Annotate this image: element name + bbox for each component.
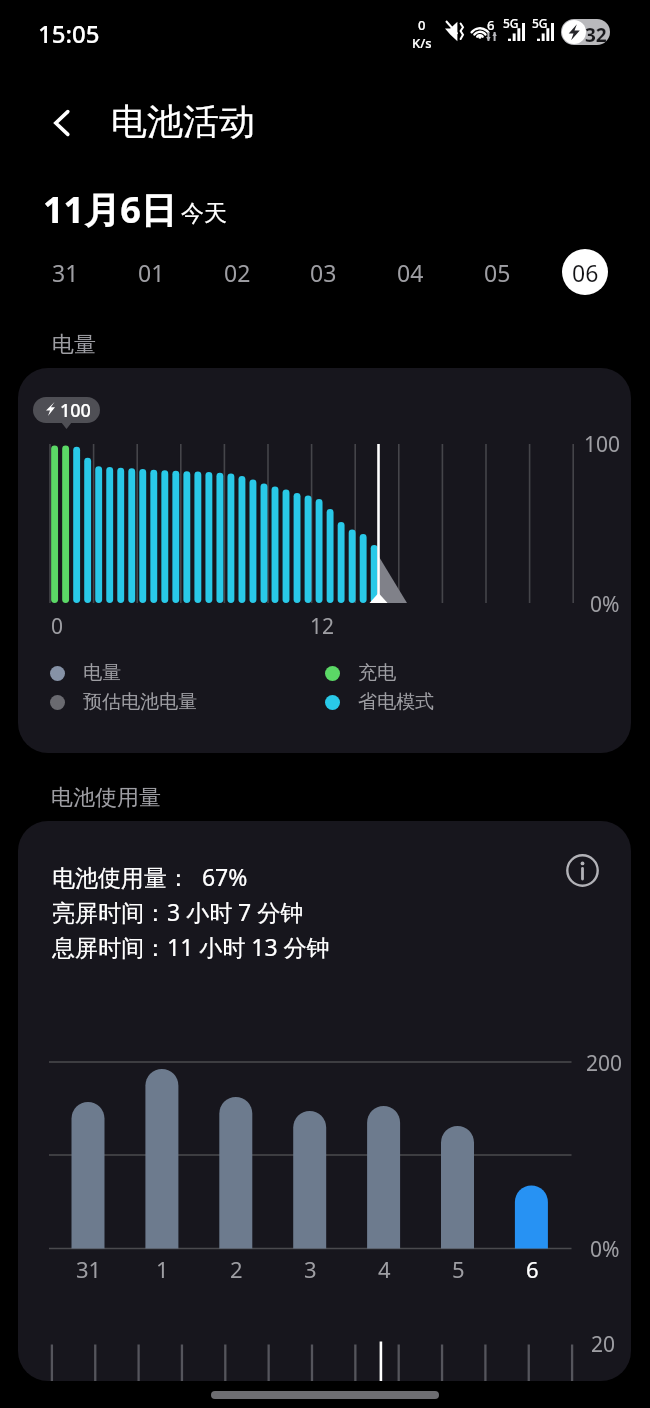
staticText: 11月6日 — [43, 185, 177, 234]
button[interactable]: 06 — [541, 242, 628, 302]
staticText: 03 — [310, 257, 337, 288]
staticText: 6 — [526, 1254, 539, 1284]
button[interactable]: 05 — [454, 242, 541, 302]
button[interactable]: Back — [38, 98, 88, 148]
staticText: 04 — [397, 257, 424, 288]
staticText: 电池活动 — [111, 99, 255, 144]
button[interactable]: 31 — [22, 242, 108, 302]
staticText: 电量 — [83, 661, 121, 685]
staticText: 息屏时间：11 小时 13 分钟 — [52, 931, 330, 962]
staticText: 预估电池电量 — [83, 690, 197, 714]
staticText: 亮屏时间：3 小时 7 分钟 — [52, 896, 304, 927]
staticText: 电池使用量 — [51, 784, 161, 812]
staticText: 3 — [304, 1254, 317, 1284]
staticText: 32 — [585, 22, 607, 45]
staticText: 2 — [230, 1254, 243, 1284]
staticText: 200 — [586, 1049, 623, 1078]
staticText: 15:05 — [38, 17, 100, 50]
staticText: 0 — [51, 612, 64, 641]
staticText: 12 — [310, 612, 335, 641]
staticText: 05 — [484, 257, 511, 288]
staticText: 31 — [76, 1254, 102, 1284]
button[interactable]: 100 — [18, 368, 631, 753]
staticText: 充电 — [358, 661, 396, 685]
staticText: 02 — [224, 257, 251, 288]
staticText: 电池使用量： 67% — [52, 861, 248, 892]
staticText: 31 — [52, 257, 79, 288]
staticText: 0% — [590, 1235, 620, 1264]
staticText: 0 — [418, 16, 426, 34]
staticText: 01 — [138, 257, 165, 288]
staticText: 5G — [532, 15, 548, 31]
staticText: 电量 — [52, 331, 96, 359]
staticText: 100 — [60, 398, 91, 423]
staticText: 20 — [591, 1330, 616, 1359]
staticText: 5G — [503, 15, 519, 31]
button[interactable]: 电池使用量： 67% — [18, 821, 631, 1381]
button[interactable]: 充电 — [325, 661, 396, 685]
staticText: 4 — [378, 1254, 391, 1284]
staticText: 0% — [590, 590, 620, 619]
button[interactable]: 03 — [280, 242, 367, 302]
button[interactable]: 预估电池电量 — [50, 690, 197, 714]
button[interactable]: 电量 — [50, 661, 121, 685]
button[interactable]: 01 — [108, 242, 194, 302]
button[interactable]: 02 — [194, 242, 280, 302]
staticText: 5 — [452, 1254, 465, 1284]
staticText: 省电模式 — [358, 690, 434, 714]
staticText: 06 — [572, 257, 599, 288]
staticText: 100 — [584, 430, 621, 459]
staticText: 今天 — [181, 199, 227, 228]
staticText: 6 — [487, 16, 495, 34]
staticText: 1 — [156, 1254, 169, 1284]
staticText: K/s — [412, 34, 432, 52]
button[interactable]: Info — [559, 847, 605, 893]
button[interactable]: 省电模式 — [325, 690, 434, 714]
button[interactable]: 04 — [367, 242, 454, 302]
